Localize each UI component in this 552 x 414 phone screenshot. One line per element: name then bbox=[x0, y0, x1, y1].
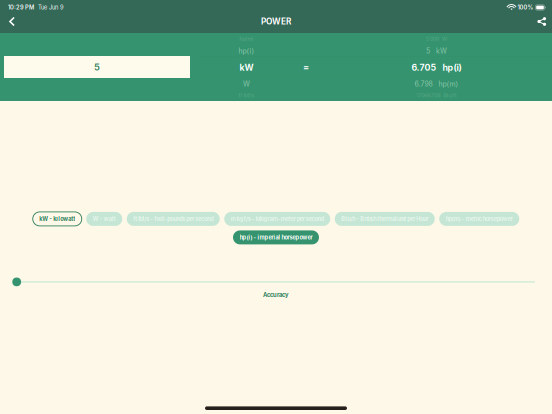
staticText: m kgf/s - kilogram-meter per second bbox=[231, 215, 324, 222]
staticText: hp(i) - imperial horsepower bbox=[239, 234, 312, 241]
staticText: kW bbox=[239, 62, 253, 73]
button[interactable]: ft lbf/s - foot-pounds per second bbox=[127, 212, 220, 226]
staticText: Accuracy bbox=[263, 291, 289, 298]
button[interactable]: W - watt bbox=[86, 212, 122, 226]
staticText: hp(m) - metric horsepower bbox=[446, 215, 513, 222]
staticText: hp(m) bbox=[239, 36, 253, 42]
staticText: 10:29 PM bbox=[8, 4, 34, 11]
staticText: 100% bbox=[518, 4, 534, 11]
button[interactable]: hp(i) - imperial horsepower bbox=[233, 230, 319, 244]
button[interactable]: Btu/h - British thermal unit per Hour bbox=[335, 212, 435, 226]
staticText: W bbox=[243, 80, 250, 88]
staticText: hp(i) bbox=[238, 47, 254, 55]
button[interactable]: 5 bbox=[4, 56, 190, 78]
button[interactable]: m kgf/s - kilogram-meter per second bbox=[224, 212, 330, 226]
staticText: W - watt bbox=[93, 215, 116, 222]
staticText: 6.705 hp(i) bbox=[411, 62, 461, 73]
staticText: 17066.708 Btu/h bbox=[416, 92, 456, 98]
button[interactable]: Back bbox=[3, 12, 21, 30]
button[interactable]: hp(m) - metric horsepower bbox=[439, 212, 519, 226]
staticText: 5 000 W bbox=[426, 36, 447, 42]
staticText: = bbox=[303, 61, 309, 72]
staticText: ft lbf/s - foot-pounds per second bbox=[133, 215, 213, 222]
staticText: POWER bbox=[261, 16, 291, 26]
button[interactable]: Share bbox=[533, 12, 551, 30]
button[interactable]: kW - kilowatt bbox=[33, 212, 82, 226]
staticText: kW - kilowatt bbox=[39, 215, 75, 222]
staticText: Tue Jun 9 bbox=[38, 4, 64, 11]
staticText: 5 kW bbox=[426, 47, 447, 55]
staticText: 5 bbox=[94, 61, 100, 73]
staticText: ft lbf/s bbox=[238, 92, 254, 98]
staticText: Btu/h - British thermal unit per Hour bbox=[341, 215, 428, 222]
staticText: 6.798 hp(m) bbox=[414, 80, 458, 88]
